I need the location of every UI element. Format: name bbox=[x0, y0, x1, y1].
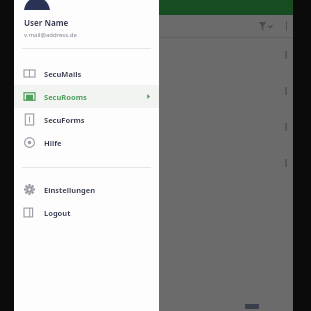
button[interactable]: Logout bbox=[14, 201, 159, 224]
staticText: SecuForms bbox=[44, 115, 85, 125]
button[interactable]: SecuMails bbox=[14, 62, 159, 85]
button[interactable]: SecuRooms bbox=[14, 85, 159, 108]
button[interactable]: SecuForms bbox=[14, 108, 159, 131]
staticText: Einstellungen bbox=[44, 185, 96, 195]
staticText: SecuRooms bbox=[44, 92, 87, 102]
staticText: Logout bbox=[44, 208, 71, 218]
staticText: v.mail@address.de bbox=[24, 31, 77, 39]
button[interactable]: Hilfe bbox=[14, 131, 159, 154]
staticText: SecuMails bbox=[44, 69, 82, 79]
button[interactable]: More options bbox=[279, 15, 293, 37]
staticText: User Name bbox=[24, 17, 69, 28]
button[interactable]: Einstellungen bbox=[14, 178, 159, 201]
staticText: Hilfe bbox=[44, 138, 62, 148]
button[interactable]: Filter bbox=[253, 15, 279, 37]
